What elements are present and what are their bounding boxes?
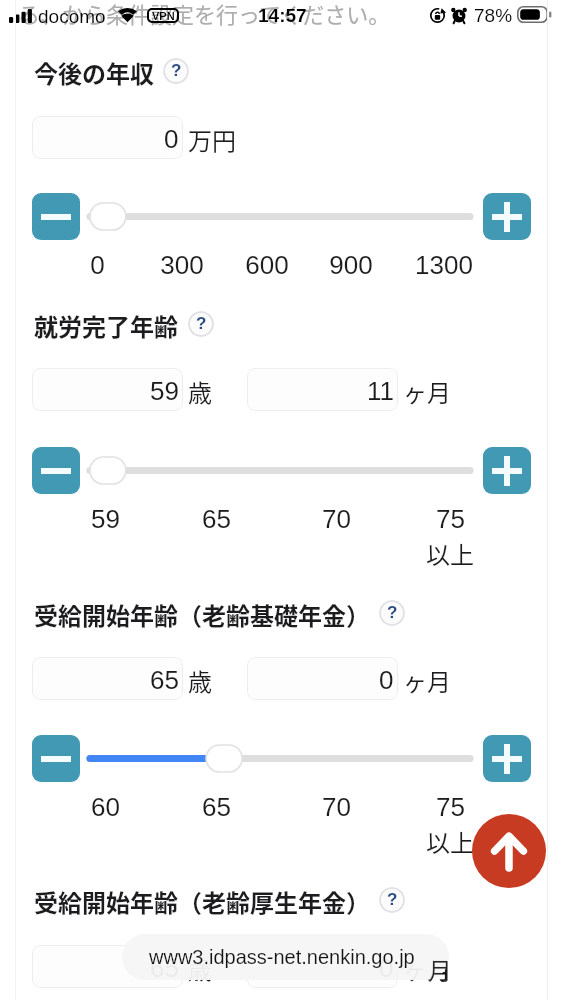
staticText: ? [171,61,182,80]
staticText: ヶ月 [403,374,451,409]
button[interactable]: 0 [32,116,183,159]
button[interactable]: Increase [483,735,531,782]
staticText: 0 [164,124,179,153]
staticText: 65 [150,953,179,982]
staticText: 1300 [415,250,473,279]
button[interactable]: Help [163,58,189,84]
button[interactable]: Decrease [32,193,80,240]
staticText: 70 [322,504,351,533]
staticText: 万円 [188,122,236,157]
button[interactable]: 65 [32,657,183,700]
staticText: 65 [150,665,179,694]
staticText: 65 [202,504,231,533]
staticText: 受給開始年齢（老齢厚生年金） [34,884,370,919]
staticText: docomo [38,6,106,27]
button[interactable]: 11 [247,368,398,411]
button[interactable]: Scroll to top [472,814,546,888]
staticText: 59 [150,376,179,405]
button[interactable]: Help [379,887,405,913]
staticText: ? [387,603,398,622]
staticText: 今後の年収 [34,55,154,90]
staticText: 600 [245,250,289,279]
staticText: 歳 [188,663,212,698]
button[interactable]: Help [379,600,405,626]
staticText: ? [196,314,207,333]
staticText: 受給開始年齢（老齢基礎年金） [34,597,370,632]
staticText: 75 [436,504,465,533]
button[interactable]: 0 [247,657,398,700]
button[interactable]: Decrease [32,735,80,782]
staticText: 14:57 [258,5,307,26]
staticText: 65 [202,792,231,821]
staticText: 75 [436,792,465,821]
staticText: ヶ月 [403,951,451,986]
staticText: 歳 [188,951,212,986]
staticText: 11 [367,376,394,405]
staticText: 就労完了年齢 [34,308,178,343]
staticText: 歳 [188,374,212,409]
button[interactable]: Help [188,311,214,337]
staticText: 0 [90,250,105,279]
button[interactable]: 65 [32,945,183,988]
staticText: 300 [160,250,204,279]
staticText: 60 [91,792,120,821]
staticText: 78% [474,5,513,26]
button[interactable]: Decrease [32,447,80,494]
button[interactable]: 0 [247,945,398,988]
staticText: www3.idpass-net.nenkin.go.jp [149,946,415,968]
staticText: 70 [322,792,351,821]
button[interactable]: 59 [32,368,183,411]
button[interactable]: Increase [483,447,531,494]
staticText: 0 [379,665,394,694]
staticText: ヶ月 [403,663,451,698]
staticText: 月 [428,952,452,987]
staticText: 以上 [426,536,474,571]
staticText: VPN [152,10,175,22]
staticText: 以上 [426,824,474,859]
button[interactable]: Increase [483,193,531,240]
staticText: 900 [329,250,373,279]
staticText: る、から条件設定を行ってください。 [18,0,391,29]
staticText: 59 [91,504,120,533]
staticText: ? [387,890,398,909]
staticText: 0 [379,953,394,982]
